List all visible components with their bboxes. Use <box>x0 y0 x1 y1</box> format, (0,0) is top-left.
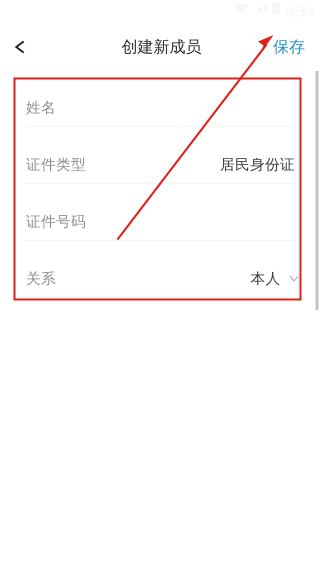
staticText: 证件号码 <box>26 212 86 230</box>
staticText: 证件类型 <box>26 155 86 173</box>
staticText: 保存 <box>273 37 305 57</box>
button[interactable]: 证件号码 <box>14 184 300 241</box>
staticText: 本人 <box>251 269 281 287</box>
button[interactable]: 关系 <box>14 241 300 298</box>
button[interactable]: 保存 <box>273 24 320 70</box>
staticText: 居民身份证 <box>220 155 295 173</box>
staticText: 关系 <box>26 269 56 287</box>
button[interactable]: 姓名 <box>14 70 300 127</box>
staticText: 创建新成员 <box>121 37 201 57</box>
button[interactable]: 返回 <box>0 24 40 70</box>
button[interactable]: 证件类型 <box>14 127 300 184</box>
staticText: 姓名 <box>26 98 56 116</box>
